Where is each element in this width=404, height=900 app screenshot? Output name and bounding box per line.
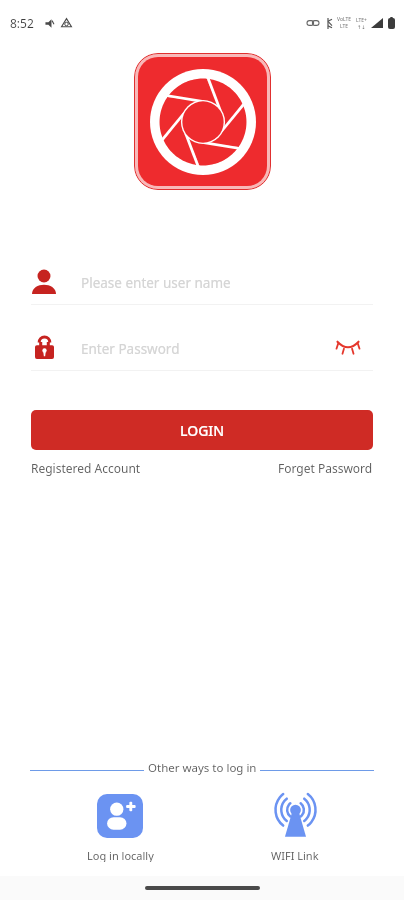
staticText: Enter Password [81, 340, 180, 358]
staticText: 8:52 [10, 15, 34, 31]
button[interactable]: WIFI Link [221, 794, 369, 862]
button[interactable]: Log in locally [46, 794, 194, 862]
staticText: LOGIN [180, 421, 225, 440]
button[interactable]: Forget Password [278, 460, 373, 476]
button[interactable]: App logo [134, 53, 271, 190]
staticText: LTE+ [356, 17, 367, 24]
staticText: ↑↓ [357, 24, 366, 30]
button[interactable]: Show password [335, 334, 361, 360]
staticText: Other ways to log in [148, 760, 257, 776]
button[interactable]: Registered Account [31, 460, 141, 476]
staticText: Log in locally [87, 848, 154, 862]
staticText: WIFI Link [271, 848, 319, 862]
staticText: VoLTE [337, 16, 352, 23]
staticText: LTE [340, 23, 349, 30]
button[interactable]: LOGIN [31, 410, 373, 450]
staticText: Please enter user name [81, 274, 231, 292]
